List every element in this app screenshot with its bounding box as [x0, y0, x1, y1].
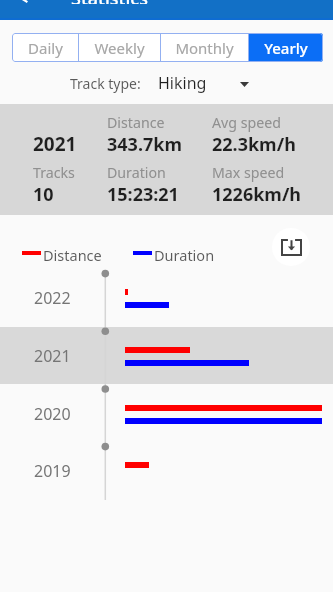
button[interactable]: Back: [12, 0, 34, 5]
staticText: Avg speed: [212, 113, 281, 132]
button[interactable]: Weekly: [79, 33, 160, 62]
staticText: 2022: [34, 287, 71, 309]
staticText: Distance: [107, 113, 165, 132]
button[interactable]: Track type:: [70, 70, 249, 96]
staticText: Statistics: [71, 0, 148, 4]
staticText: Track type:: [70, 74, 141, 93]
button[interactable]: Duration: [133, 245, 215, 261]
staticText: Distance: [43, 245, 102, 261]
staticText: Daily: [28, 38, 63, 58]
staticText: Tracks: [33, 163, 75, 182]
button[interactable]: Yearly: [249, 33, 323, 62]
staticText: Hiking: [158, 72, 207, 94]
staticText: 343.7km: [107, 132, 182, 157]
button[interactable]: Distance: [22, 245, 102, 261]
staticText: 2021: [33, 131, 77, 157]
staticText: Weekly: [94, 38, 145, 58]
staticText: Duration: [107, 163, 166, 182]
staticText: Max speed: [212, 163, 285, 182]
staticText: 22.3km/h: [212, 132, 296, 157]
staticText: Duration: [154, 245, 215, 261]
staticText: 15:23:21: [107, 182, 179, 207]
button[interactable]: Statistics: [0, 0, 333, 18]
staticText: 1226km/h: [212, 182, 302, 207]
staticText: Monthly: [175, 38, 234, 58]
staticText: 2019: [34, 460, 71, 482]
button[interactable]: Monthly: [161, 33, 248, 62]
staticText: Yearly: [264, 38, 308, 58]
staticText: 10: [33, 182, 54, 207]
staticText: 2021: [34, 345, 71, 367]
button[interactable]: Daily: [12, 33, 78, 62]
staticText: 2020: [34, 403, 71, 425]
button[interactable]: Export: [272, 228, 310, 266]
